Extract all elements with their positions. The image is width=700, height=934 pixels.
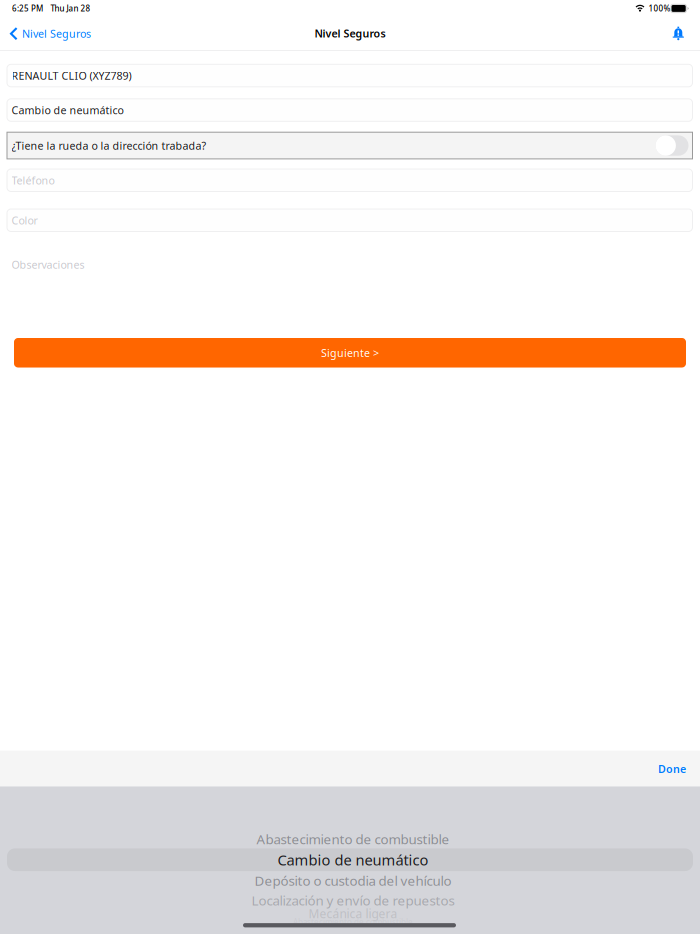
button[interactable]: ¿Tiene la rueda o la dirección trabada? [7, 132, 692, 159]
staticText: Abastecimiento de combustible [256, 830, 449, 848]
staticText: Siguiente > [321, 346, 379, 360]
staticText: Done [658, 762, 686, 776]
button[interactable]: Notifications [672, 27, 684, 40]
staticText: 6:25 PM [12, 3, 43, 14]
button[interactable]: Cambio de neumático [7, 99, 692, 121]
button[interactable]: RENAULT CLIO (XYZ789) [7, 64, 692, 87]
staticText: Observaciones [11, 257, 84, 272]
staticText: Cambio de neumático [11, 103, 123, 117]
button[interactable]: Teléfono [7, 169, 692, 191]
staticText: Localización y envío de repuestos [251, 891, 454, 909]
staticText: Depósito o custodia del vehículo [254, 872, 451, 889]
staticText: Thu Jan 28 [50, 3, 90, 14]
staticText: ¿Tiene la rueda o la dirección trabada? [11, 138, 206, 153]
button[interactable]: Color [7, 209, 692, 231]
staticText: 100% [648, 3, 670, 14]
staticText: Color [11, 213, 37, 227]
staticText: Cambio de neumático [277, 850, 428, 869]
button[interactable]: Siguiente > [14, 338, 686, 367]
staticText: Teléfono [11, 173, 54, 187]
staticText: Nivel Seguros [22, 27, 91, 41]
staticText: Mecánica ligera [308, 906, 397, 921]
staticText: Abastecimiento de combustible [293, 916, 413, 927]
staticText: RENAULT CLIO (XYZ789) [11, 68, 131, 83]
button[interactable]: Done [0, 751, 700, 786]
button[interactable]: Nivel Seguros [10, 27, 91, 41]
staticText: Nivel Seguros [314, 26, 385, 41]
